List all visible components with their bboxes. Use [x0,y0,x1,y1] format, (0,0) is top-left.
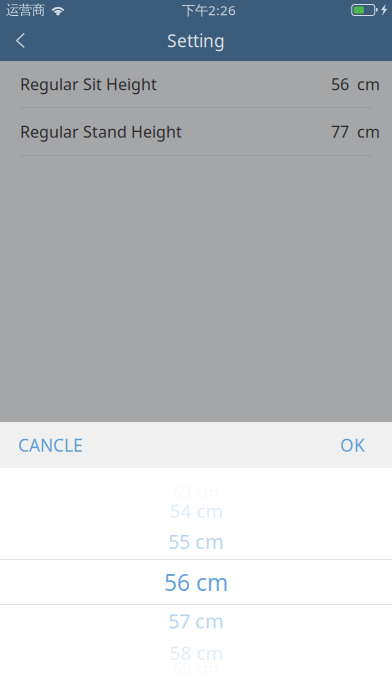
button[interactable]: Regular Stand Height [0,108,392,155]
staticText: Setting [167,29,225,52]
button[interactable]: OK [326,422,392,468]
button[interactable]: Regular Sit Height [0,61,392,107]
staticText: 运营商 [6,2,45,18]
staticText: 77 cm [331,121,380,142]
staticText: CANCLE [18,433,83,456]
staticText: 57 cm [168,607,224,634]
staticText: 56 cm [164,567,228,597]
staticText: OK [340,433,365,456]
staticText: 55 cm [168,528,224,554]
staticText: 56 cm [331,73,380,95]
staticText: 54 cm [169,498,222,523]
staticText: Regular Stand Height [20,121,182,142]
staticText: 59 cm [173,658,218,679]
staticText: 下午2:26 [182,1,236,19]
button[interactable]: Back [0,20,40,61]
staticText: 58 cm [169,640,222,665]
button[interactable]: CANCLE [0,422,97,468]
staticText: Regular Sit Height [20,73,157,95]
